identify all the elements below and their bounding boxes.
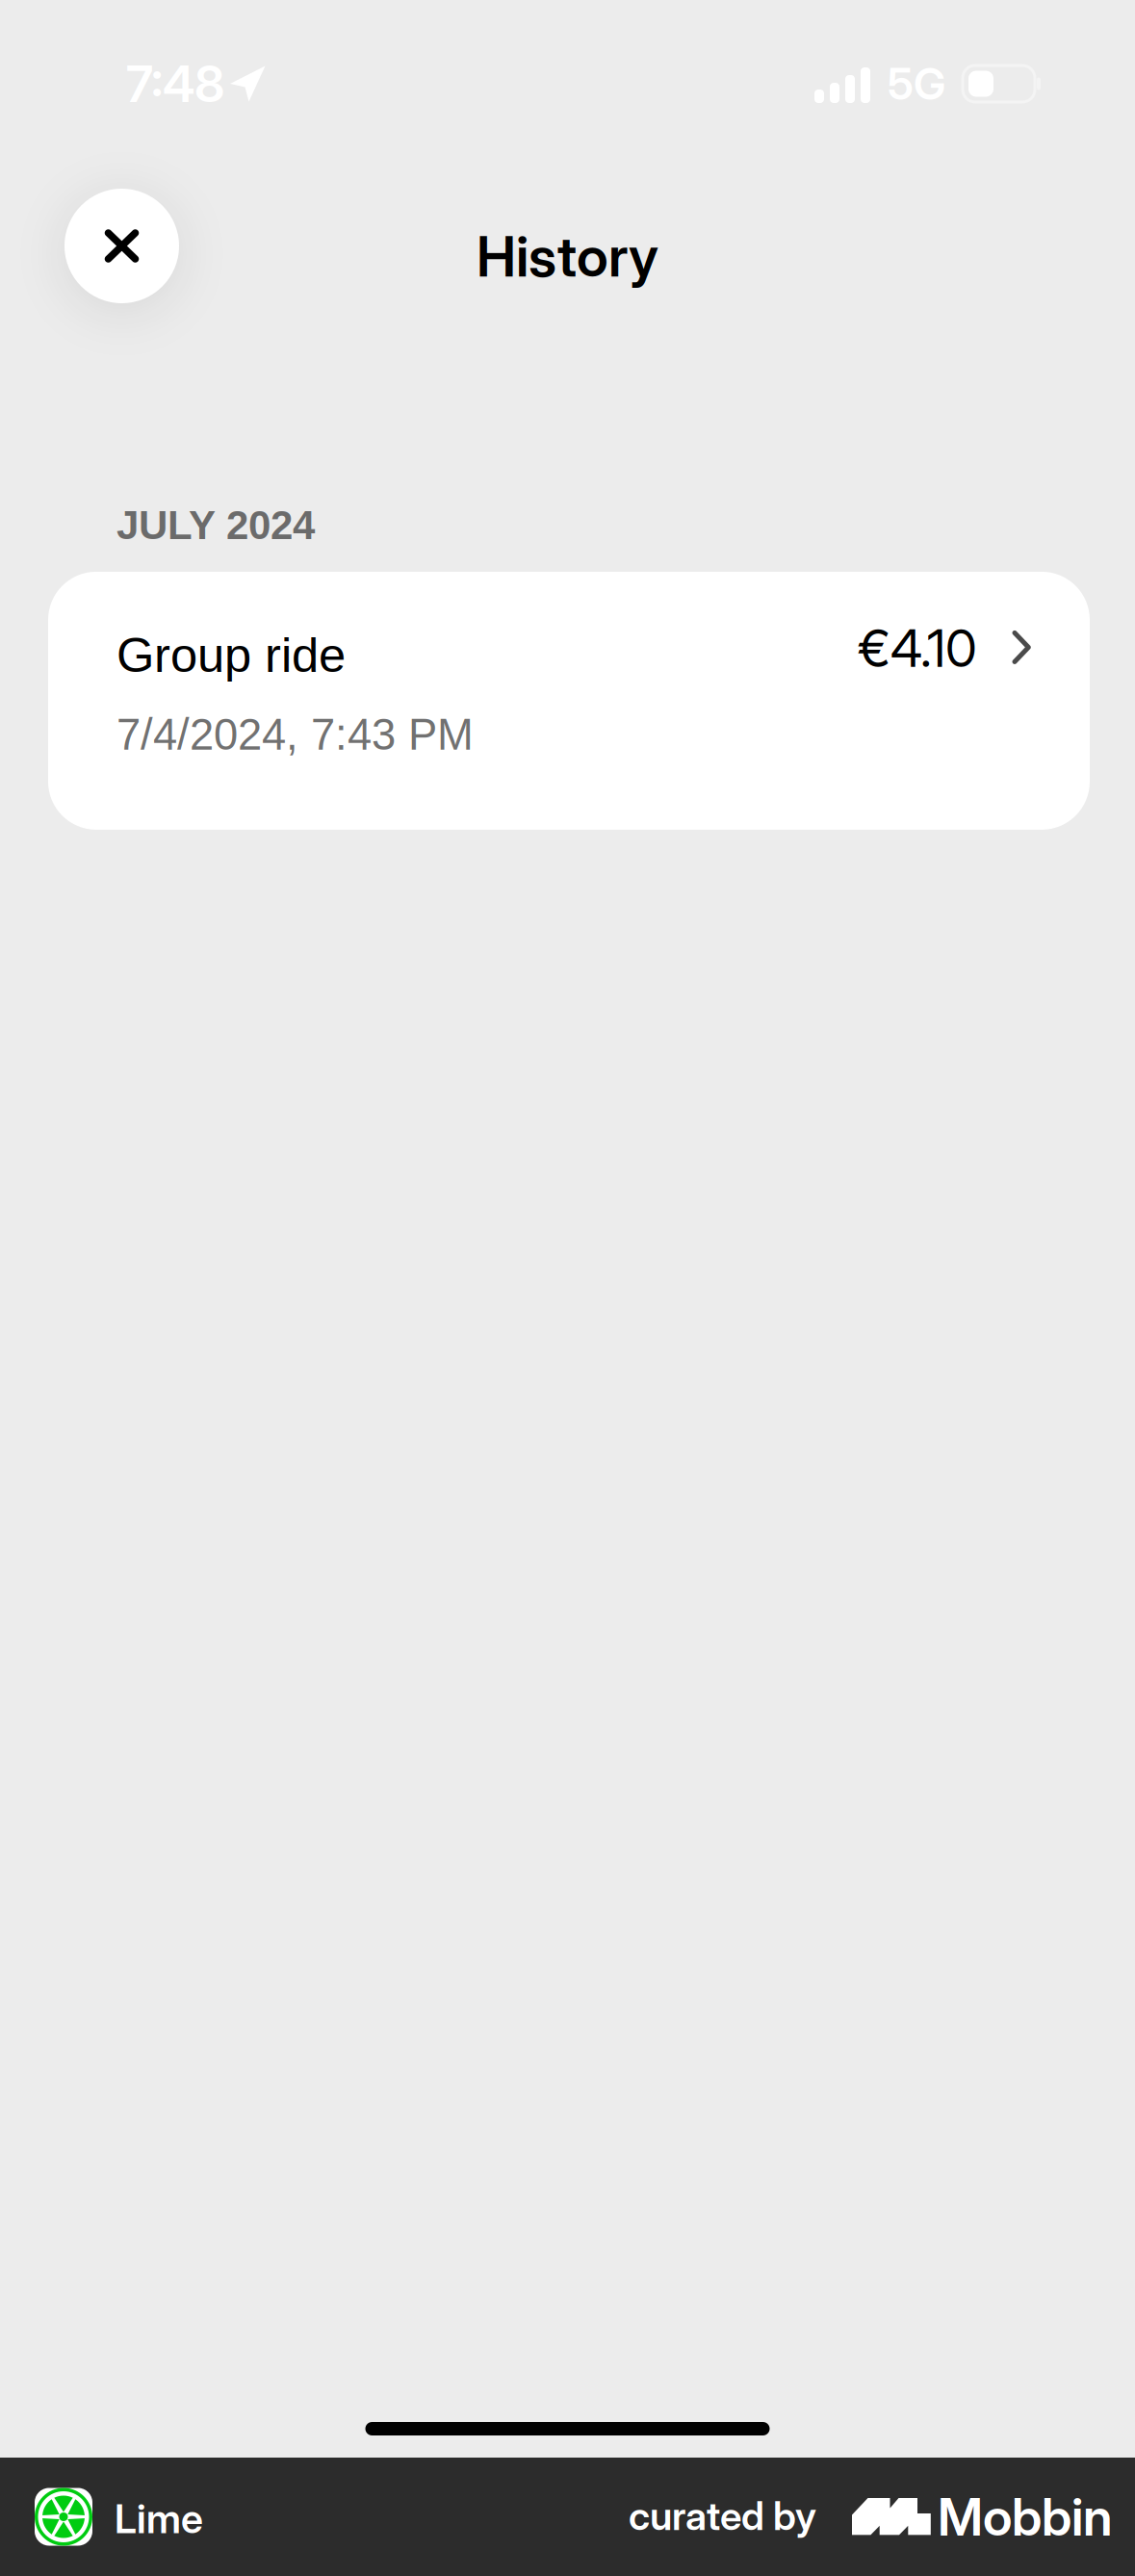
staticText: 7:48 — [126, 53, 224, 114]
button[interactable]: Close — [64, 189, 179, 303]
staticText: Lime — [115, 2495, 203, 2543]
staticText: History — [477, 223, 658, 290]
staticText: 5G — [888, 57, 945, 110]
button[interactable]: Group ride — [48, 572, 1090, 830]
staticText: 7/4/2024, 7:43 PM — [116, 710, 474, 759]
staticText: Mobbin — [938, 2486, 1113, 2548]
staticText: curated by — [629, 2492, 816, 2540]
staticText: €4.10 — [858, 617, 977, 679]
staticText: JULY 2024 — [116, 502, 315, 548]
staticText: Group ride — [116, 628, 346, 682]
